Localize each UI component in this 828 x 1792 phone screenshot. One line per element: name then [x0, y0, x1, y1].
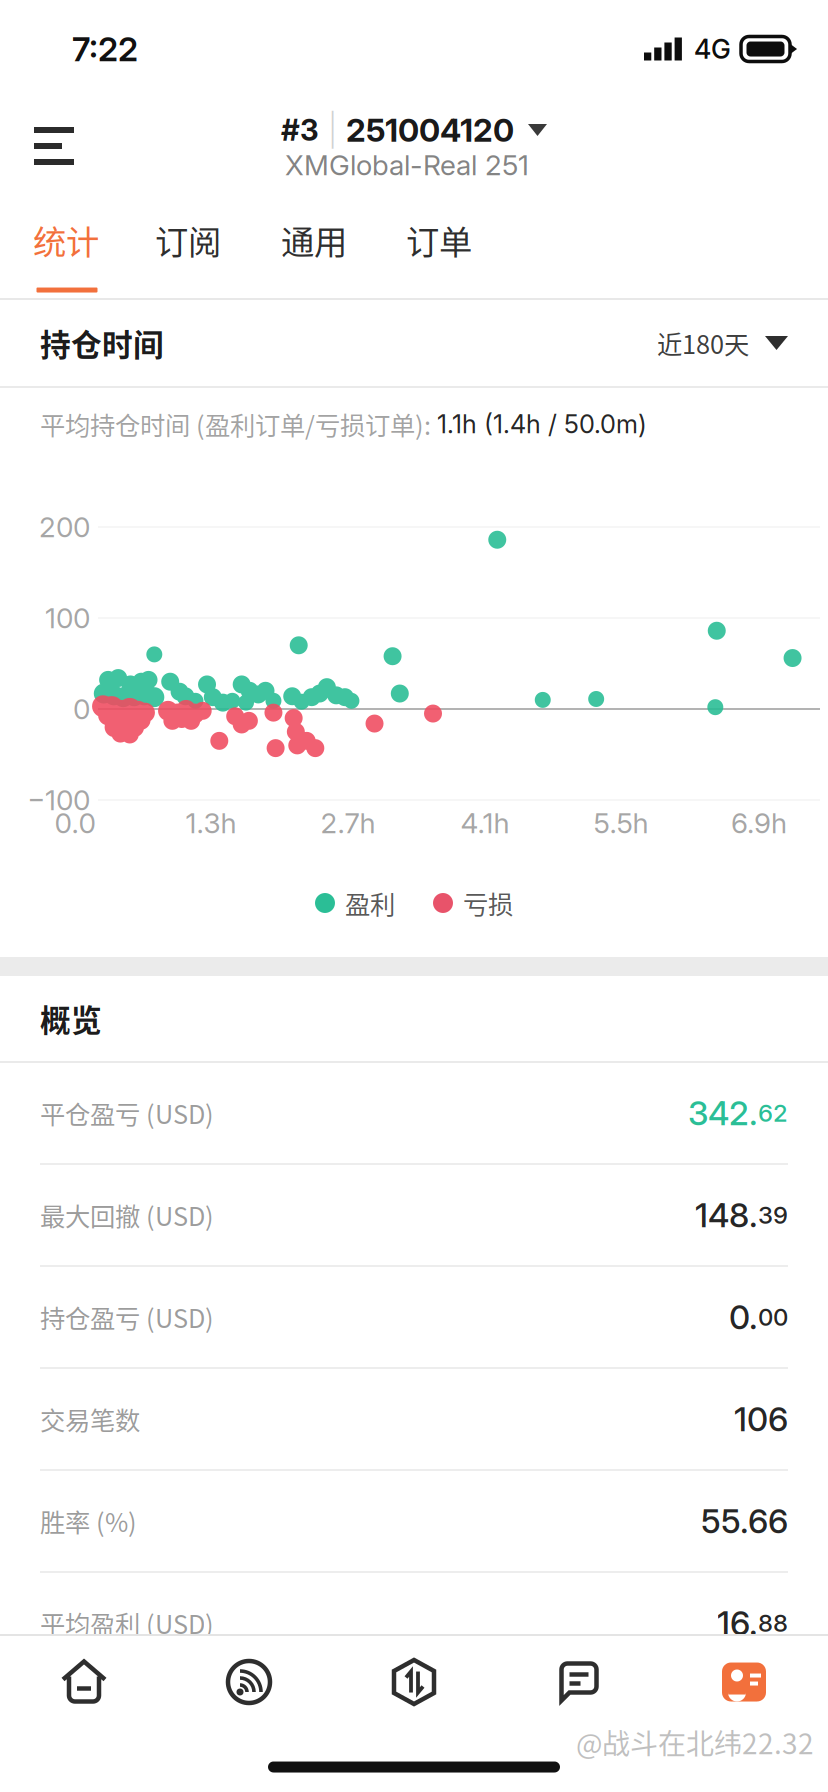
staticText: 最大回撤 (USD) [40, 1197, 214, 1233]
staticText: 0. [729, 1297, 758, 1337]
button[interactable]: Trade [331, 1636, 496, 1728]
staticText: 0.0 [54, 806, 95, 840]
staticText: 16. [717, 1603, 758, 1643]
staticText: 持仓盈亏 (USD) [40, 1299, 214, 1335]
button[interactable]: #3 [281, 111, 547, 149]
button[interactable]: Home [1, 1636, 166, 1728]
button[interactable]: 统计 [2, 190, 128, 300]
staticText: 概览 [40, 996, 102, 1041]
staticText: 4G [694, 33, 731, 65]
button[interactable]: 近180天 [657, 305, 788, 381]
staticText: 统计 [33, 216, 99, 264]
staticText: 47 [760, 1710, 788, 1739]
staticText: 12. [718, 1705, 760, 1745]
staticText: 1.1h (1.4h / 50.0m) [437, 409, 647, 439]
staticText: 100 [45, 601, 90, 635]
staticText: 订阅 [155, 216, 221, 264]
staticText: 0 [73, 692, 90, 726]
staticText: 平均持仓时间 (盈利订单/亏损订单): [40, 406, 437, 442]
staticText: 平均盈利 (USD) [40, 1605, 214, 1641]
staticText: 55.66 [701, 1501, 788, 1541]
staticText: #3 [281, 112, 319, 148]
staticText: 88 [758, 1608, 788, 1637]
button[interactable]: 通用 [251, 185, 377, 295]
staticText: 持仓时间 [40, 321, 164, 365]
staticText: 1.3h [185, 806, 236, 840]
staticText: 通用 [281, 216, 347, 264]
button[interactable]: Messages [496, 1636, 661, 1728]
staticText: 106 [734, 1399, 788, 1439]
staticText: XMGlobal-Real 251 [285, 148, 529, 182]
staticText: 亏损 [463, 885, 513, 921]
staticText: 平仓盈亏 (USD) [40, 1095, 214, 1131]
staticText: 2.7h [320, 806, 375, 840]
staticText: 7:22 [72, 29, 138, 69]
staticText: @战斗在北纬22.32 [576, 1722, 814, 1762]
button[interactable]: 订单 [376, 185, 502, 295]
staticText: 订单 [406, 216, 472, 264]
staticText: 4.1h [460, 806, 509, 840]
staticText: 近180天 [657, 325, 749, 361]
button[interactable]: 订阅 [125, 185, 251, 295]
staticText: | [328, 111, 337, 149]
staticText: 5.5h [593, 806, 648, 840]
staticText: 342. [688, 1093, 758, 1133]
staticText: 200 [39, 510, 90, 544]
staticText: 交易笔数 [40, 1401, 140, 1437]
staticText: 62 [758, 1098, 788, 1127]
staticText: 251004120 [346, 111, 514, 149]
staticText: 盈利 [345, 885, 395, 921]
button[interactable]: Signals [166, 1636, 331, 1728]
staticText: 胜率 (%) [40, 1503, 137, 1539]
staticText: −100 [27, 783, 90, 817]
staticText: 00 [758, 1302, 788, 1331]
staticText: 148. [695, 1195, 758, 1235]
button[interactable]: Menu [8, 105, 100, 187]
staticText: 6.9h [731, 806, 787, 840]
button[interactable]: Profile [661, 1636, 826, 1728]
staticText: 39 [758, 1200, 788, 1229]
